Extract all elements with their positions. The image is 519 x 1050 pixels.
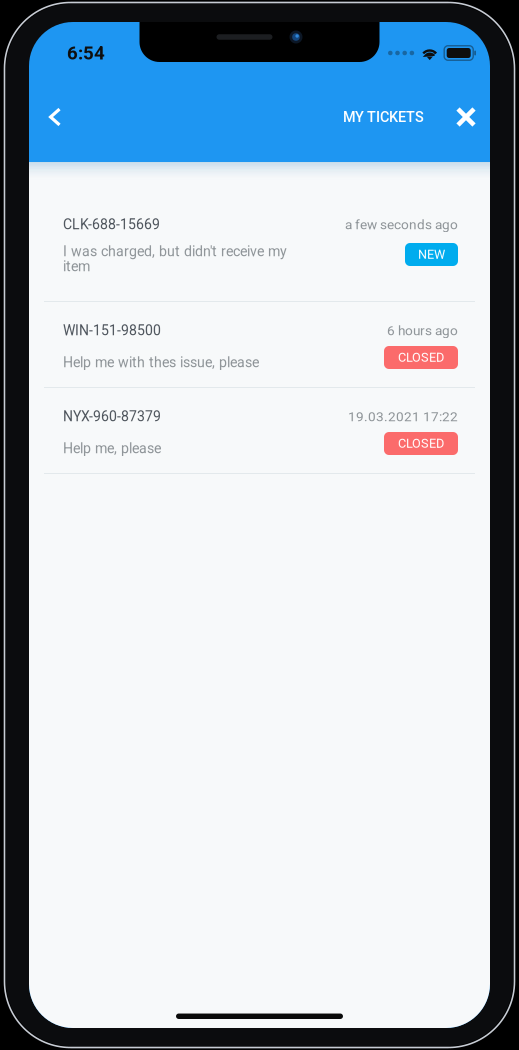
button[interactable]: CLK-688-15669 xyxy=(29,162,490,301)
staticText: CLOSED xyxy=(398,436,444,451)
staticText: MY TICKETS xyxy=(343,109,424,125)
staticText: 6:54 xyxy=(67,42,105,64)
staticText: 6 hours ago xyxy=(387,322,458,338)
staticText: a few seconds ago xyxy=(345,216,458,232)
staticText: I was charged, but didn't receive my xyxy=(63,243,287,260)
staticText: NYX-960-87379 xyxy=(63,408,161,425)
staticText: item xyxy=(63,258,90,275)
staticText: 19.03.2021 17:22 xyxy=(348,408,458,424)
button[interactable]: Close xyxy=(449,86,483,148)
staticText: Help me with thes issue, please xyxy=(63,354,259,371)
button[interactable]: NYX-960-87379 xyxy=(29,388,490,473)
staticText: NEW xyxy=(418,247,445,262)
staticText: WIN-151-98500 xyxy=(63,322,161,339)
button[interactable]: Back xyxy=(48,86,92,148)
staticText: CLOSED xyxy=(398,350,444,365)
button[interactable]: WIN-151-98500 xyxy=(29,302,490,387)
staticText: CLK-688-15669 xyxy=(63,216,160,233)
staticText: Help me, please xyxy=(63,440,161,457)
